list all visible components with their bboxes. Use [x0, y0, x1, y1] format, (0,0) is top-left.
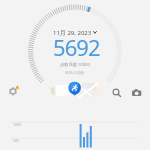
staticText: 昨日の活動 — [65, 70, 85, 75]
button[interactable]: Search — [110, 86, 124, 100]
button[interactable]: Activity location — [66, 80, 84, 98]
staticText: 1000 — [13, 122, 22, 127]
button[interactable]: Settings — [6, 84, 21, 99]
staticText: 11月 29, 2023 — [53, 29, 92, 37]
staticText: 歩数目標 10000 — [60, 62, 90, 68]
button[interactable]: Camera — [130, 86, 144, 100]
staticText: 500 — [13, 138, 20, 143]
staticText: 5692 — [53, 32, 100, 62]
button[interactable]: 11月 29, 2023 — [53, 29, 97, 37]
